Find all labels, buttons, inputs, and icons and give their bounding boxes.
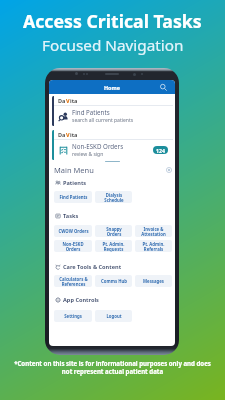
staticText: Home (104, 84, 120, 91)
button[interactable]: Search (159, 83, 168, 92)
staticText: Invoice & Attestation (141, 226, 166, 237)
button[interactable]: Find Patients (54, 191, 92, 203)
staticText: Messages (143, 278, 164, 284)
staticText: Find Patients (72, 108, 110, 116)
button[interactable]: Da (52, 96, 173, 126)
staticText: Calculators & References (59, 276, 88, 287)
button[interactable]: Dialysis Schedule (95, 191, 132, 203)
button[interactable]: Pt. Admin. Requests (95, 240, 132, 252)
staticText: Focused Navigation (42, 35, 184, 56)
button[interactable]: Da (52, 130, 173, 160)
staticText: V (66, 97, 70, 104)
staticText: Logout (106, 313, 122, 319)
button[interactable]: Calculators & References (54, 275, 92, 287)
staticText: Snappy Orders (106, 226, 122, 237)
staticText: Main Menu (54, 165, 94, 175)
button[interactable]: Logout (95, 310, 132, 322)
staticText: Patients (63, 179, 87, 187)
button[interactable]: CWOW Orders (54, 225, 92, 237)
staticText: Pt. Admin. Requests (102, 241, 125, 252)
staticText: ita (70, 97, 78, 104)
button[interactable]: Options (166, 167, 172, 173)
staticText: Da (58, 97, 66, 104)
button[interactable]: Snappy Orders (95, 225, 132, 237)
staticText: App Controls (63, 296, 99, 304)
staticText: ita (70, 131, 78, 138)
staticText: 124 (156, 147, 165, 154)
staticText: Pt. Admin. Referrals (142, 241, 165, 252)
staticText: Da (58, 131, 66, 138)
staticText: Care Tools & Content (63, 263, 122, 271)
staticText: Non-ESKD Orders (62, 241, 84, 252)
button[interactable]: Pt. Admin. Referrals (135, 240, 172, 252)
staticText: Dialysis Schedule (104, 192, 124, 203)
staticText: Find Patients (59, 194, 88, 200)
button[interactable]: Settings (54, 310, 92, 322)
staticText: Tasks (63, 212, 79, 220)
staticText: Non-ESKD Orders (72, 142, 124, 150)
staticText: review & sign (72, 151, 104, 158)
button[interactable]: Messages (135, 275, 172, 287)
staticText: Settings (64, 313, 82, 319)
staticText: search all current patients (72, 117, 134, 124)
staticText: Comms Hub (101, 278, 127, 284)
button[interactable]: Non-ESKD Orders (54, 240, 92, 252)
staticText: CWOW Orders (58, 228, 89, 234)
button[interactable]: Comms Hub (95, 275, 132, 287)
staticText: V (66, 131, 70, 138)
button[interactable]: Invoice & Attestation (135, 225, 172, 237)
staticText: *Content on this site is for information… (0, 359, 225, 375)
staticText: Access Critical Tasks (23, 9, 202, 33)
